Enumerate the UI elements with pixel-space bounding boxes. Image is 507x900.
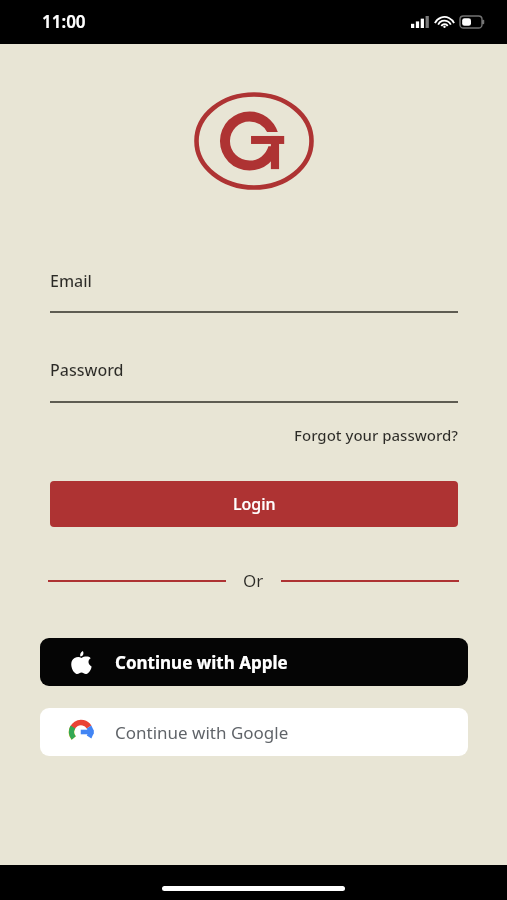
staticText: Forgot your password? bbox=[50, 425, 458, 445]
staticText: Continue with Google bbox=[115, 721, 289, 744]
button[interactable]: Continue with Apple bbox=[40, 638, 468, 686]
button[interactable]: Login bbox=[50, 481, 458, 527]
staticText: 11:00 bbox=[42, 10, 86, 33]
staticText: Login bbox=[233, 493, 276, 515]
staticText: Continue with Apple bbox=[115, 651, 288, 674]
staticText: Email bbox=[50, 270, 92, 292]
button[interactable]: Forgot your password? bbox=[50, 419, 458, 451]
staticText: Password bbox=[50, 359, 124, 381]
staticText: Or bbox=[243, 569, 264, 592]
button[interactable]: Continue with Google bbox=[40, 708, 468, 756]
